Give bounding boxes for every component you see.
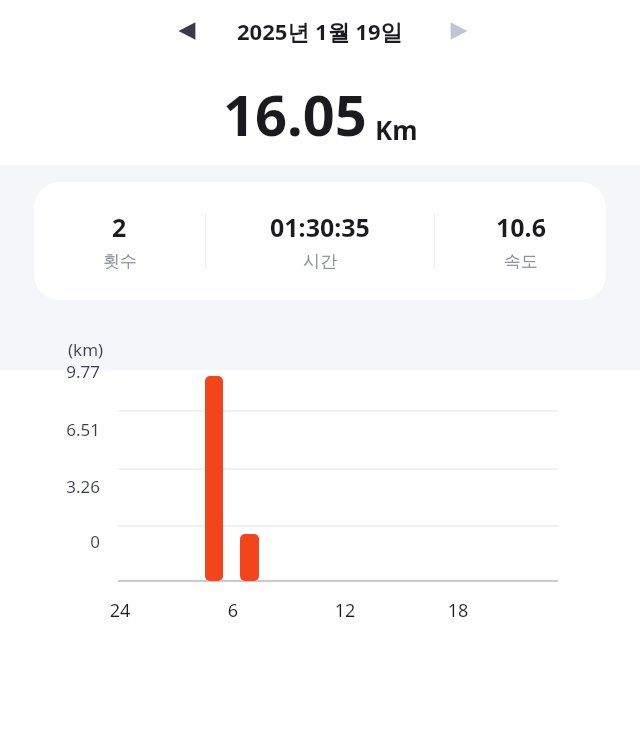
staticText: 3.26 xyxy=(20,475,100,498)
staticText: (km) xyxy=(68,338,104,361)
staticText: 18 xyxy=(428,598,488,623)
button[interactable]: 이전 날짜 xyxy=(163,7,211,55)
staticText: 0 xyxy=(20,530,100,553)
staticText: 01:30:35 xyxy=(270,210,370,244)
staticText: 6 xyxy=(203,598,263,623)
button[interactable]: 10.6 xyxy=(435,210,606,272)
button[interactable]: 2 xyxy=(34,210,205,272)
staticText: 9.77 xyxy=(20,360,100,383)
button[interactable]: 다음 날짜 xyxy=(435,7,483,55)
button[interactable]: 01:30:35 xyxy=(206,210,434,272)
staticText: 10.6 xyxy=(496,210,546,244)
staticText: 16.05 xyxy=(223,76,367,152)
staticText: 속도 xyxy=(504,251,538,272)
staticText: Km xyxy=(375,112,418,147)
staticText: 24 xyxy=(90,598,150,623)
staticText: 2 xyxy=(112,210,127,244)
staticText: 횟수 xyxy=(103,251,137,272)
staticText: 6.51 xyxy=(20,418,100,441)
staticText: 2025년 1월 19일 xyxy=(237,16,403,46)
staticText: 12 xyxy=(315,598,375,623)
staticText: 시간 xyxy=(303,251,337,272)
